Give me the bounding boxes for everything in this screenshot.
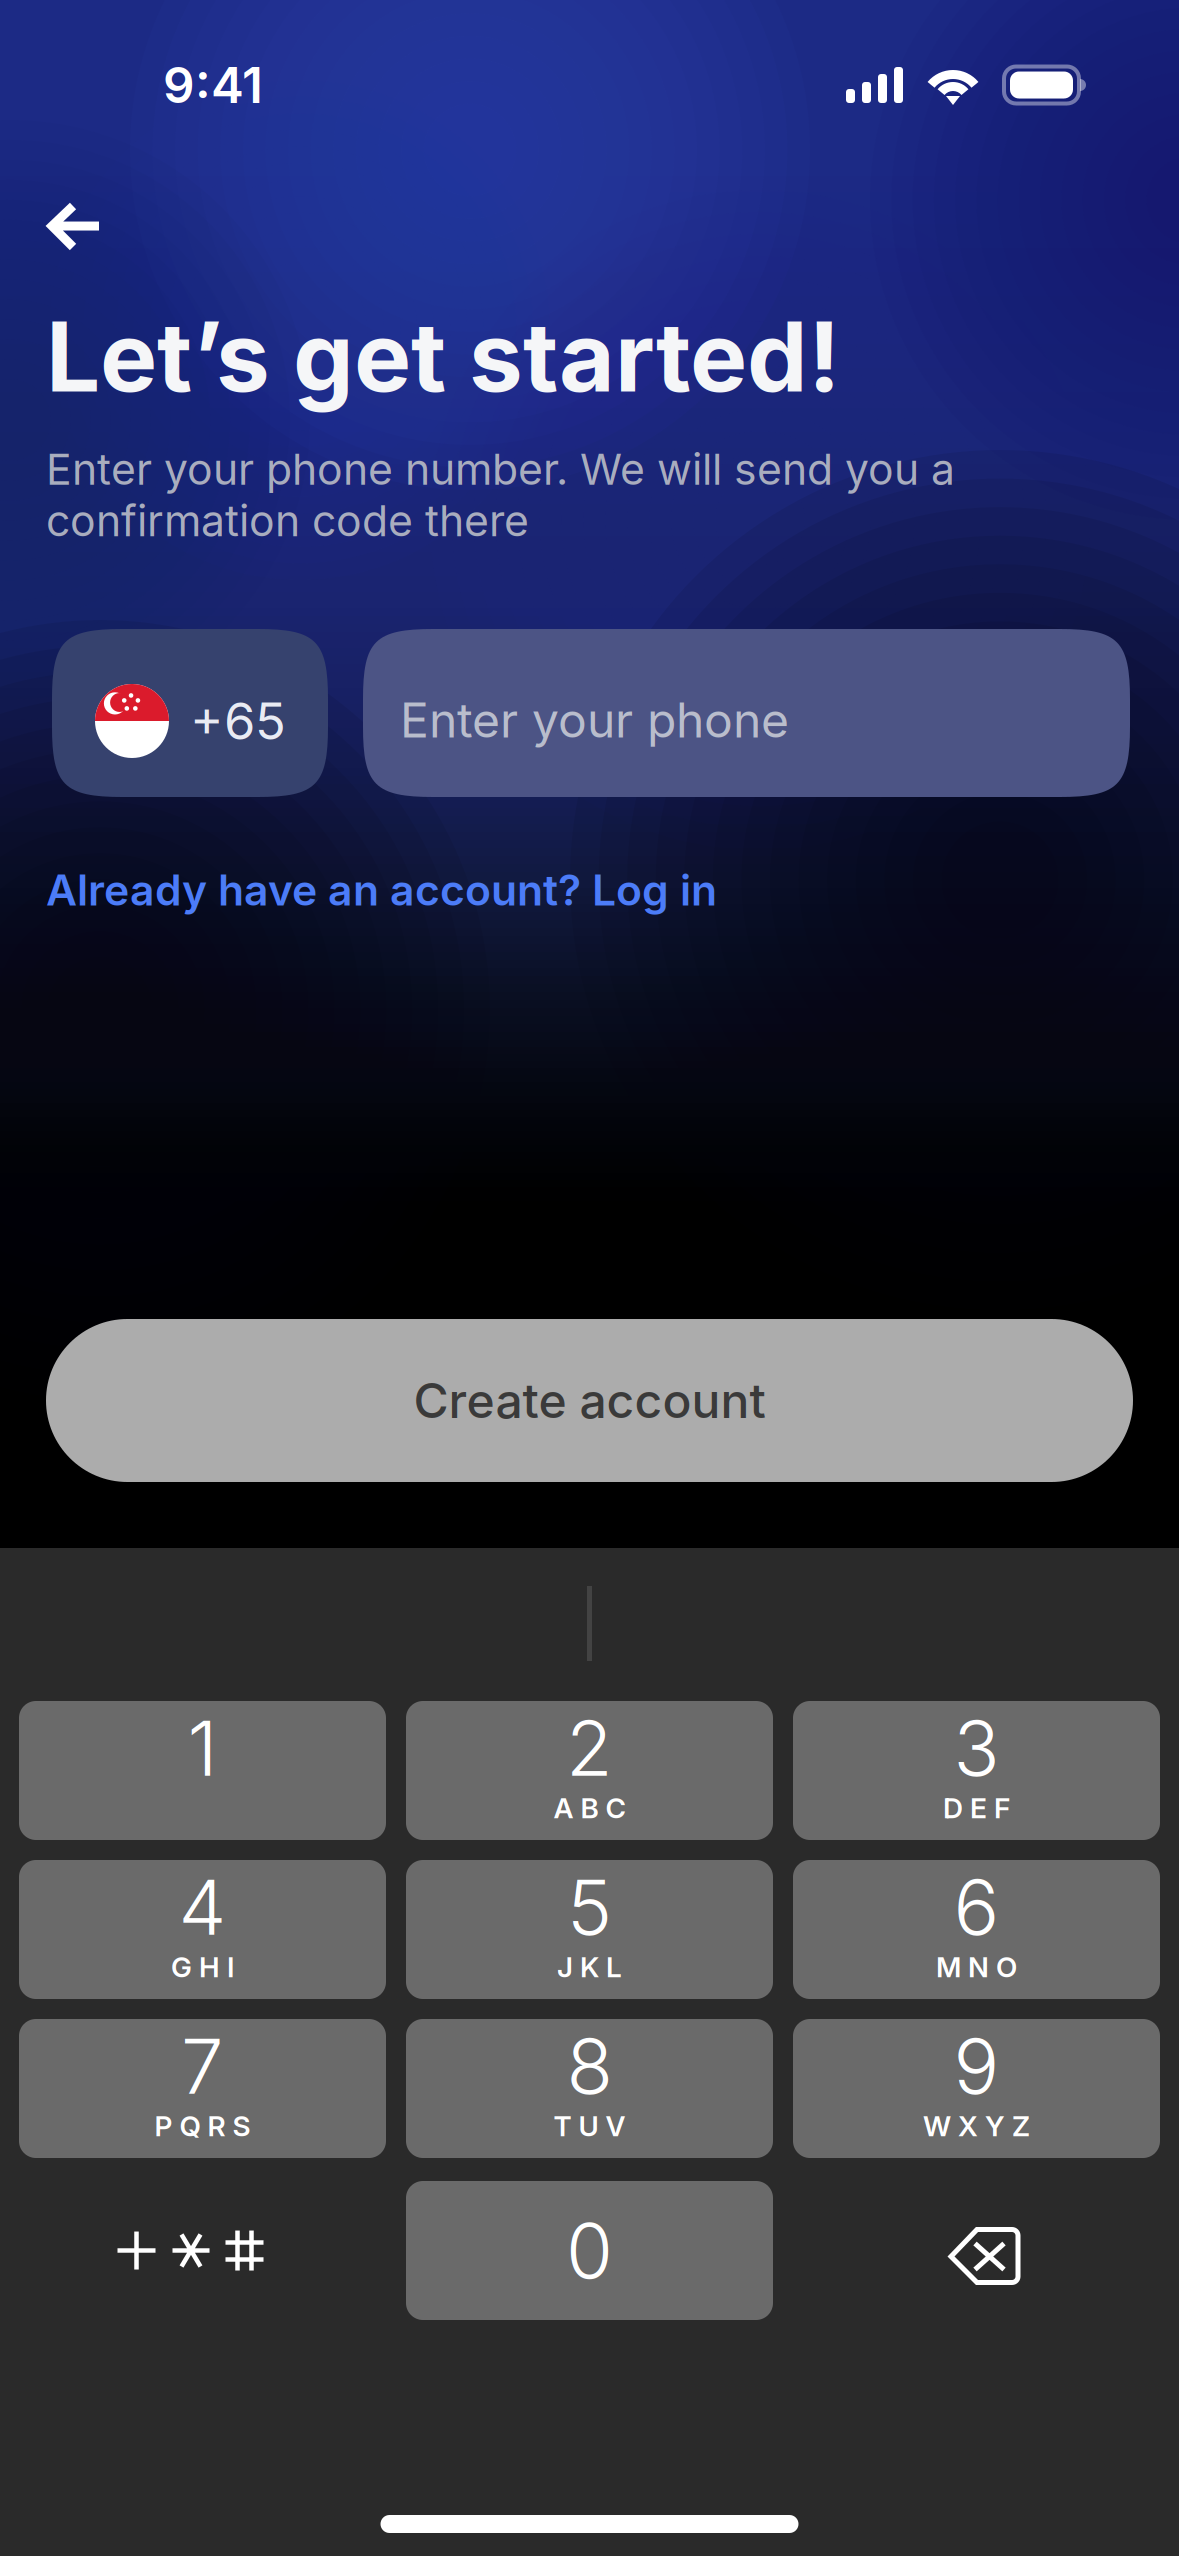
staticText: 8 [566,2020,612,2112]
button[interactable]: Plus, star and hash [19,2181,386,2320]
button[interactable]: 1 [19,1701,386,1840]
staticText: 2 [566,1702,613,1794]
button[interactable]: Back [0,175,136,278]
staticText: Create account [413,1371,765,1430]
button[interactable]: Enter your phone [363,629,1130,797]
staticText: A B C [553,1791,625,1825]
staticText: T U V [553,2109,625,2143]
staticText: 5 [567,1861,612,1953]
button[interactable]: 3 [793,1701,1160,1840]
staticText: +65 [190,690,286,752]
staticText: 4 [178,1861,226,1953]
button[interactable]: 7 [19,2019,386,2158]
staticText: 7 [181,2020,224,2112]
staticText: P Q R S [154,2109,250,2143]
staticText: Enter your phone number. We will send yo… [46,443,955,547]
button[interactable]: 5 [406,1860,773,1999]
button[interactable]: 4 [19,1860,386,1999]
button[interactable]: 2 [406,1701,773,1840]
button[interactable]: Create account [46,1319,1133,1482]
staticText: Already have an account? Log in [46,864,717,916]
staticText: G H I [171,1950,234,1984]
staticText: Let’s get started! [46,298,840,415]
staticText: Enter your phone [400,691,789,749]
staticText: 1 [187,1702,217,1794]
staticText: 6 [953,1861,999,1953]
staticText: J K L [557,1950,622,1984]
staticText: D E F [943,1791,1010,1825]
staticText: 3 [953,1702,999,1794]
button[interactable]: 8 [406,2019,773,2158]
button[interactable]: 0 [406,2181,773,2320]
button[interactable]: 9 [793,2019,1160,2158]
staticText: M N O [936,1950,1017,1984]
button[interactable]: Already have an account? Log in [46,852,741,928]
staticText: 0 [566,2204,613,2296]
staticText: 9 [953,2020,999,2112]
staticText: W X Y Z [923,2109,1030,2143]
staticText: 9:41 [163,55,263,115]
button[interactable]: Country code +65 [52,629,328,797]
button[interactable]: Delete [793,2181,1160,2320]
button[interactable]: 6 [793,1860,1160,1999]
